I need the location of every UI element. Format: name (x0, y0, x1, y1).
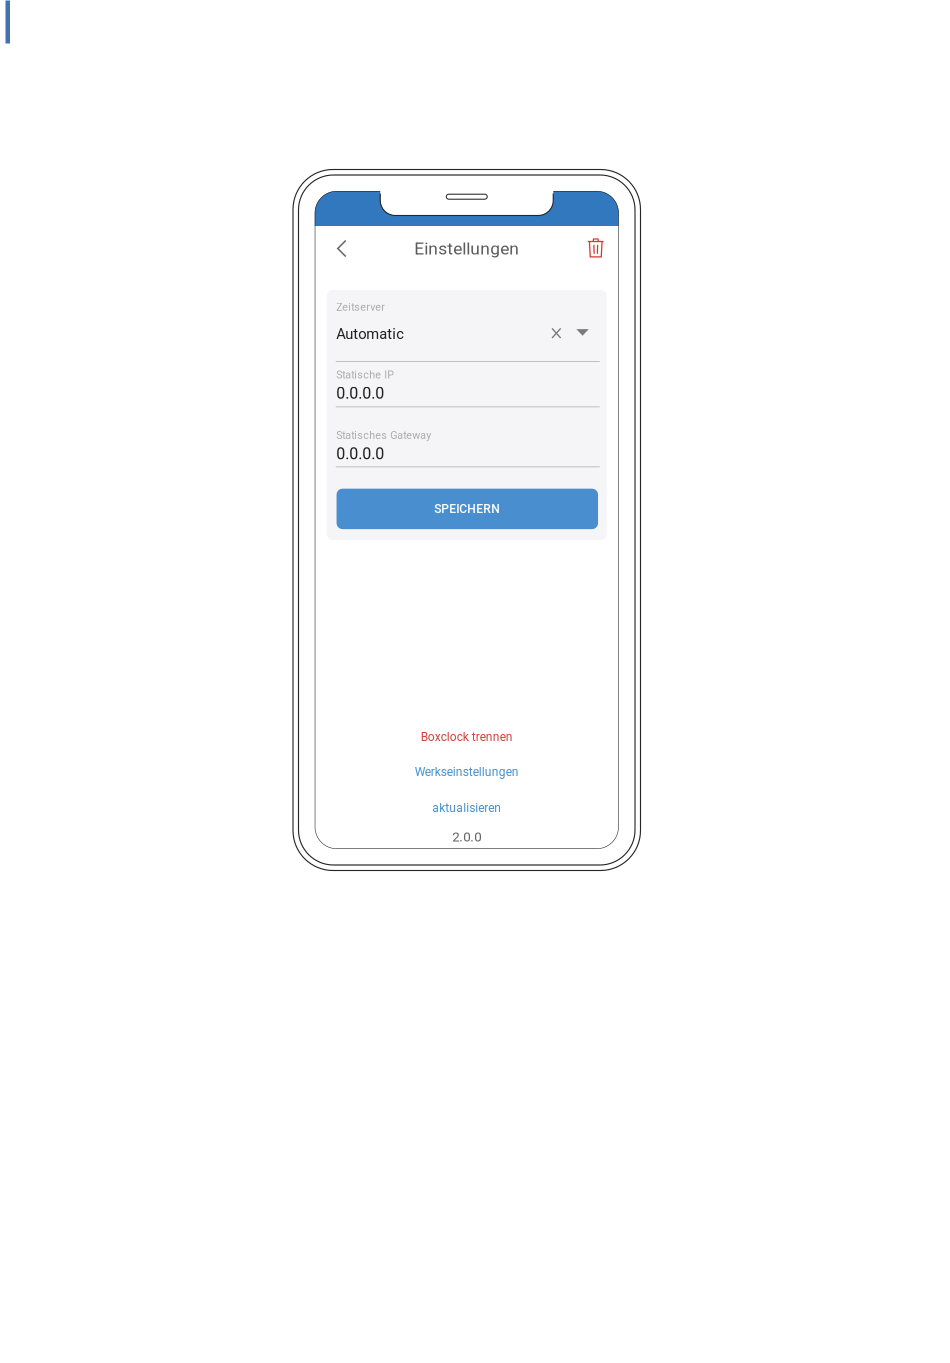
staticText: Werkseinstellungen (415, 765, 519, 779)
button[interactable]: SPEICHERN (337, 489, 598, 529)
staticText: Automatic (336, 325, 404, 343)
button[interactable]: Choose time server (573, 323, 591, 341)
staticText: Zeitserver (336, 301, 385, 313)
staticText: 0.0.0.0 (336, 384, 384, 403)
staticText: Einstellungen (414, 238, 519, 259)
staticText: aktualisieren (432, 801, 501, 815)
staticText: Statische IP (336, 368, 394, 381)
staticText: Boxclock trennen (421, 730, 513, 744)
staticText: SPEICHERN (434, 502, 500, 516)
button[interactable]: Boxclock trennen (315, 725, 619, 749)
button[interactable]: Clear time server (547, 324, 565, 342)
button[interactable]: Delete device (578, 230, 614, 266)
button[interactable]: aktualisieren (315, 796, 619, 820)
button[interactable]: Werkseinstellungen (315, 760, 619, 784)
staticText: Statisches Gateway (336, 429, 431, 441)
staticText: 2.0.0 (452, 829, 481, 845)
button[interactable]: Back (323, 230, 361, 266)
staticText: 0.0.0.0 (336, 444, 384, 463)
